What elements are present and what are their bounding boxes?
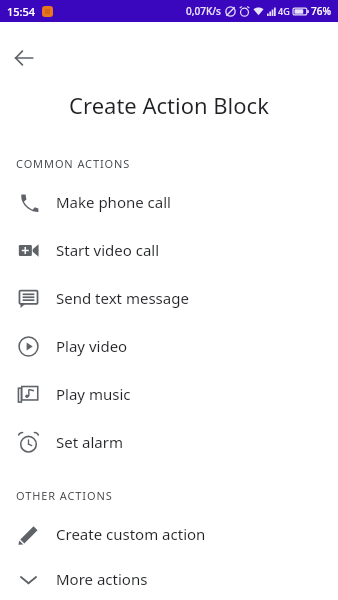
staticText: Start video call [56, 240, 160, 260]
staticText: 0,07K/s [186, 4, 221, 18]
staticText: Make phone call [56, 192, 171, 212]
staticText: Create custom action [56, 524, 206, 544]
staticText: Play video [56, 336, 128, 356]
button[interactable]: Play video [0, 322, 338, 370]
staticText: COMMON ACTIONS [16, 156, 131, 171]
button[interactable]: Send text message [0, 274, 338, 322]
button[interactable]: Make phone call [0, 178, 338, 226]
button[interactable]: Back [0, 34, 48, 82]
staticText: 4G [278, 5, 290, 17]
staticText: More actions [56, 569, 148, 589]
button[interactable]: Create custom action [0, 510, 338, 558]
staticText: OTHER ACTIONS [16, 488, 113, 503]
staticText: Set alarm [56, 432, 123, 452]
staticText: 15:54 [7, 4, 36, 19]
button[interactable]: More actions [0, 558, 338, 600]
staticText: Send text message [56, 288, 189, 308]
staticText: 76% [311, 4, 331, 18]
staticText: Play music [56, 384, 131, 404]
staticText: Create Action Block [0, 90, 338, 120]
button[interactable]: Start video call [0, 226, 338, 274]
button[interactable]: Set alarm [0, 418, 338, 466]
button[interactable]: Play music [0, 370, 338, 418]
